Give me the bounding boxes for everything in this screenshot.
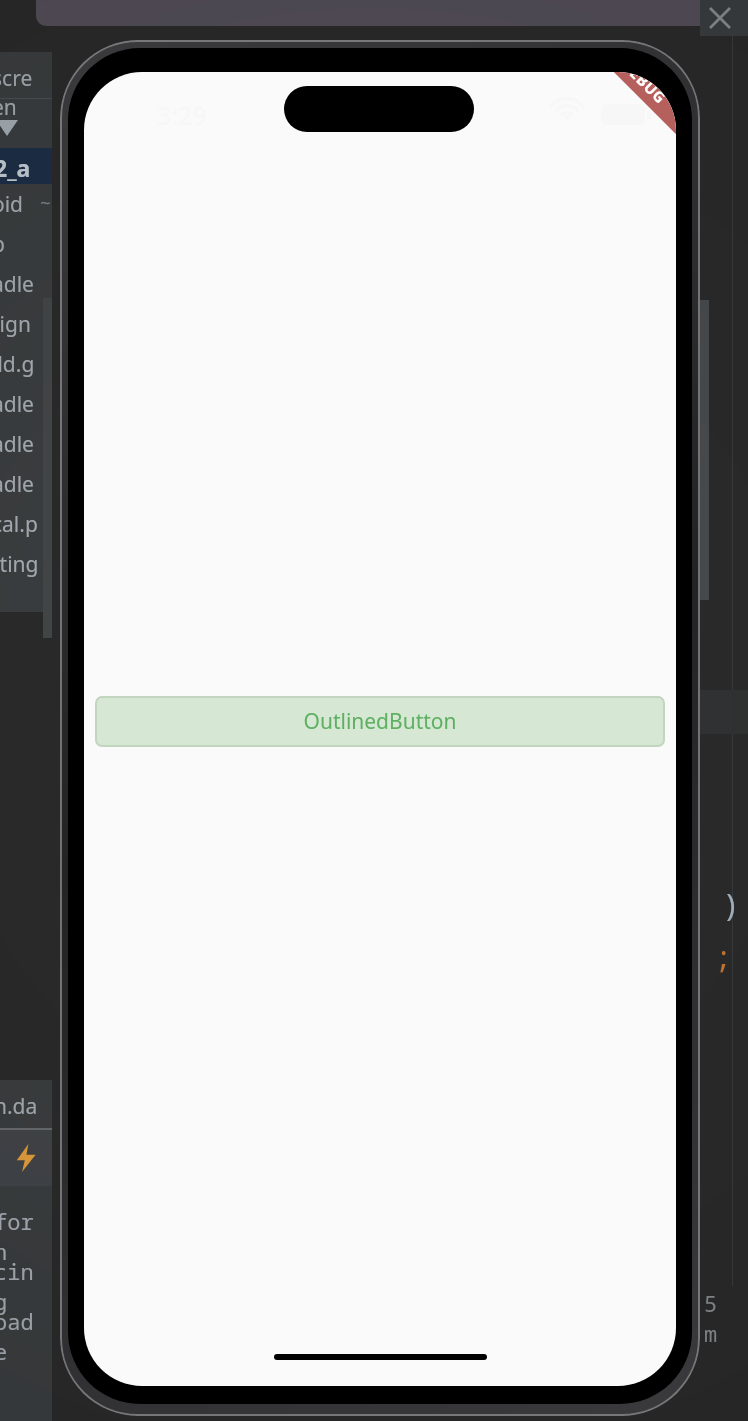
staticText: ild.g: [0, 350, 35, 379]
staticText: DEBUG: [618, 72, 671, 108]
staticText: p: [0, 230, 5, 259]
staticText: ~: [40, 190, 51, 216]
staticText: cal.p: [0, 510, 38, 539]
staticText: tign: [0, 310, 31, 339]
staticText: oid: [0, 190, 24, 219]
staticText: screen: [0, 64, 44, 122]
staticText: adle: [0, 470, 34, 499]
button[interactable]: OutlinedButton: [95, 696, 665, 747]
staticText: cing: [0, 1256, 46, 1316]
staticText: n.da: [0, 1092, 38, 1121]
staticText: 2_a: [0, 152, 31, 183]
staticText: adle: [0, 430, 34, 459]
staticText: oade: [0, 1306, 46, 1366]
staticText: adle: [0, 270, 34, 299]
staticText: ): [722, 884, 740, 925]
staticText: 5 m: [704, 1288, 748, 1348]
staticText: forn: [0, 1206, 46, 1266]
staticText: adle: [0, 390, 34, 419]
staticText: tting: [0, 550, 39, 579]
staticText: ;: [714, 936, 732, 977]
staticText: OutlinedButton: [303, 707, 457, 736]
